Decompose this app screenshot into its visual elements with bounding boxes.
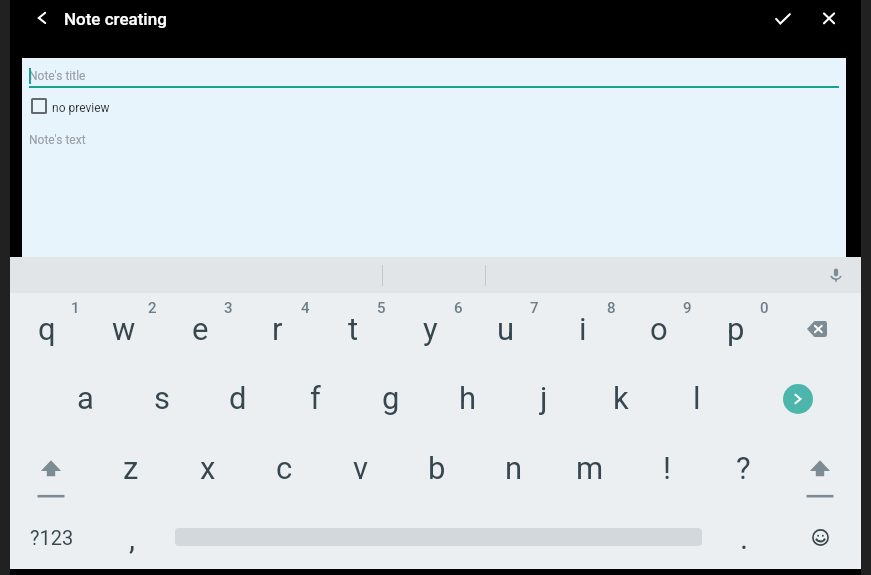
- staticText: r: [272, 311, 283, 347]
- button[interactable]: p: [698, 288, 774, 356]
- button[interactable]: g: [353, 357, 429, 425]
- staticText: 3: [224, 299, 233, 317]
- staticText: k: [613, 380, 629, 416]
- staticText: 5: [377, 299, 386, 317]
- button[interactable]: e: [162, 288, 238, 356]
- staticText: h: [459, 380, 477, 416]
- staticText: z: [123, 450, 139, 486]
- button[interactable]: t: [315, 288, 391, 356]
- staticText: ?: [736, 450, 751, 486]
- button[interactable]: w: [86, 288, 162, 356]
- button[interactable]: u: [468, 288, 544, 356]
- button[interactable]: d: [200, 357, 276, 425]
- staticText: e: [192, 311, 209, 347]
- staticText: 8: [607, 299, 616, 317]
- staticText: 2: [148, 299, 157, 317]
- staticText: b: [428, 450, 446, 486]
- staticText: j: [540, 380, 548, 416]
- staticText: c: [276, 450, 293, 486]
- button[interactable]: v: [323, 427, 399, 495]
- button[interactable]: q: [9, 288, 85, 356]
- button[interactable]: x: [170, 427, 246, 495]
- button[interactable]: j: [506, 357, 582, 425]
- button[interactable]: Emoji: [798, 515, 842, 559]
- button[interactable]: i: [545, 288, 621, 356]
- staticText: 0: [760, 299, 769, 317]
- staticText: q: [38, 311, 56, 347]
- button[interactable]: ,: [94, 497, 170, 565]
- staticText: u: [497, 311, 515, 347]
- staticText: Note's title: [29, 69, 86, 83]
- staticText: m: [576, 450, 604, 486]
- button[interactable]: Space: [175, 518, 702, 556]
- staticText: l: [693, 380, 701, 416]
- button[interactable]: c: [246, 427, 322, 495]
- button[interactable]: Back: [22, 0, 62, 39]
- button[interactable]: Backspace: [792, 304, 842, 354]
- staticText: 7: [530, 299, 539, 317]
- staticText: 9: [683, 299, 692, 317]
- button[interactable]: b: [399, 427, 475, 495]
- staticText: ?123: [30, 526, 74, 549]
- staticText: ,: [129, 520, 136, 556]
- button[interactable]: a: [47, 357, 123, 425]
- staticText: Note creating: [64, 9, 167, 29]
- button[interactable]: Voice input: [818, 257, 854, 293]
- staticText: no preview: [52, 101, 110, 115]
- button[interactable]: r: [239, 288, 315, 356]
- staticText: !: [663, 450, 671, 486]
- staticText: i: [579, 311, 587, 347]
- staticText: 1: [71, 299, 80, 317]
- button[interactable]: h: [430, 357, 506, 425]
- staticText: x: [200, 450, 216, 486]
- staticText: o: [650, 311, 668, 347]
- button[interactable]: Discard note: [809, 0, 849, 39]
- button[interactable]: !: [629, 427, 705, 495]
- button[interactable]: Shift: [21, 450, 81, 506]
- staticText: .: [740, 520, 749, 556]
- button[interactable]: f: [277, 357, 353, 425]
- staticText: n: [505, 450, 523, 486]
- staticText: y: [423, 311, 438, 347]
- button[interactable]: Save note: [763, 0, 803, 39]
- button[interactable]: s: [124, 357, 200, 425]
- staticText: Note's text: [29, 133, 86, 147]
- button[interactable]: o: [621, 288, 697, 356]
- staticText: p: [727, 311, 745, 347]
- staticText: 6: [454, 299, 463, 317]
- staticText: s: [154, 380, 170, 416]
- button[interactable]: n: [476, 427, 552, 495]
- button[interactable]: l: [659, 357, 735, 425]
- staticText: v: [353, 450, 369, 486]
- button[interactable]: y: [392, 288, 468, 356]
- staticText: a: [77, 380, 94, 416]
- staticText: 4: [301, 299, 310, 317]
- staticText: f: [310, 380, 321, 416]
- staticText: d: [229, 380, 247, 416]
- button[interactable]: Enter: [773, 374, 823, 424]
- button[interactable]: z: [93, 427, 169, 495]
- staticText: t: [348, 311, 359, 347]
- staticText: w: [112, 311, 136, 347]
- staticText: g: [382, 380, 400, 416]
- button[interactable]: k: [583, 357, 659, 425]
- button[interactable]: [29, 96, 149, 118]
- button[interactable]: m: [552, 427, 628, 495]
- button[interactable]: Shift: [790, 450, 850, 506]
- button[interactable]: ?: [705, 427, 781, 495]
- button[interactable]: ?123: [14, 503, 90, 563]
- button[interactable]: .: [706, 497, 782, 565]
